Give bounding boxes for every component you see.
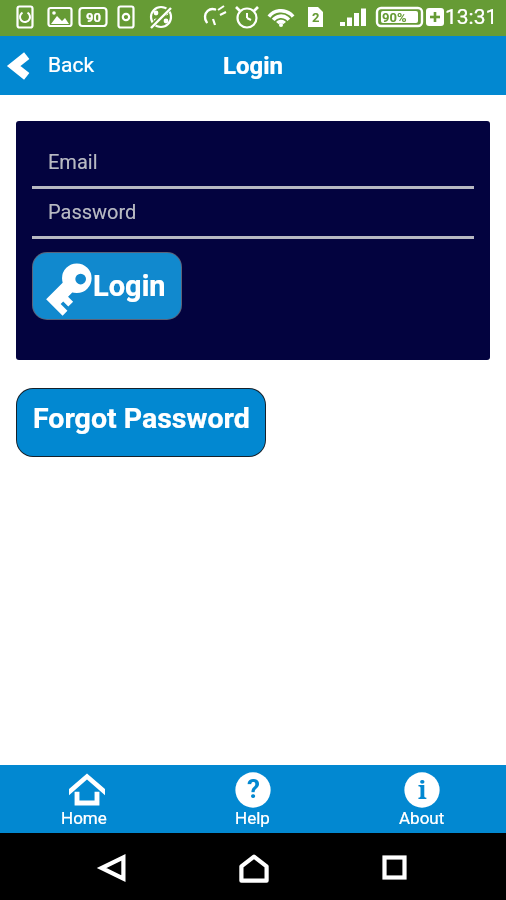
staticText: 90 (86, 10, 101, 25)
staticText: Forgot Password (33, 402, 250, 435)
staticText: i (418, 772, 427, 806)
button[interactable]: Back (100, 855, 126, 881)
button[interactable]: Forgot Password (17, 389, 265, 456)
button[interactable]: Home (239, 854, 269, 884)
button[interactable]: Back (0, 36, 506, 95)
staticText: Help (235, 808, 270, 828)
staticText: Email (48, 150, 98, 173)
staticText: Login (93, 269, 166, 303)
button[interactable]: Email (32, 150, 474, 189)
button[interactable]: Login (33, 253, 181, 319)
staticText: Login (223, 52, 284, 80)
button[interactable]: i (337, 765, 506, 828)
staticText: Password (48, 200, 137, 223)
staticText: Back (48, 53, 95, 78)
staticText: About (399, 808, 445, 828)
staticText: 2 (312, 10, 320, 25)
button[interactable]: Password (32, 200, 474, 239)
staticText: 90% (382, 10, 407, 25)
button[interactable]: Home (0, 765, 168, 828)
button[interactable]: ? (168, 765, 337, 828)
staticText: ? (247, 774, 260, 804)
button[interactable]: Recents (383, 856, 406, 879)
staticText: 13:31 (445, 5, 498, 30)
staticText: Home (61, 808, 107, 828)
